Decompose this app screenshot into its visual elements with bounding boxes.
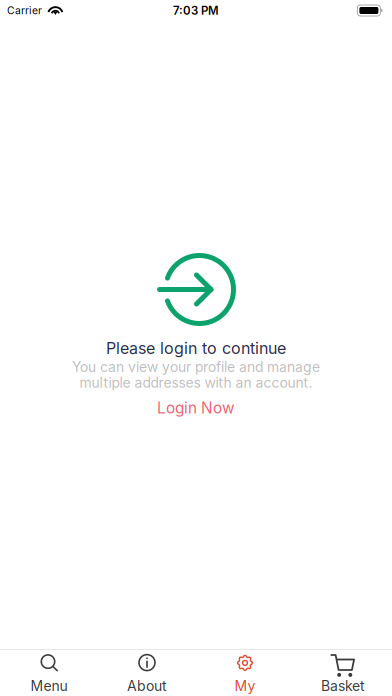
button[interactable]: Basket <box>294 650 392 696</box>
staticText: multiple addresses with an account. <box>79 374 312 391</box>
button[interactable]: My <box>196 650 294 696</box>
staticText: Menu <box>30 677 67 694</box>
staticText: Carrier <box>7 4 42 17</box>
staticText: You can view your profile and manage <box>72 359 320 375</box>
staticText: 7:03 PM <box>173 4 219 17</box>
staticText: About <box>127 677 167 694</box>
button[interactable]: Menu <box>0 650 98 696</box>
staticText: Please login to continue <box>106 338 286 358</box>
staticText: Basket <box>321 677 365 694</box>
button[interactable]: Login Now <box>157 399 235 417</box>
button[interactable]: About <box>98 650 196 696</box>
staticText: My <box>234 677 255 694</box>
staticText: Login Now <box>157 399 235 417</box>
